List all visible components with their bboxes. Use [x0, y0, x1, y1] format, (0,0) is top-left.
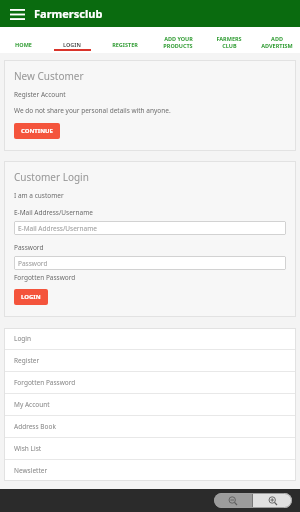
staticText: REGISTER — [112, 41, 138, 48]
button[interactable]: My Account — [4, 394, 296, 415]
staticText: ADVERTISM — [261, 42, 293, 49]
button[interactable]: REGISTER — [98, 27, 151, 53]
staticText: E-Mail Address/Username — [14, 208, 93, 217]
button[interactable]: Zoom in — [253, 493, 292, 508]
button[interactable]: Login — [4, 328, 296, 349]
staticText: Password — [14, 243, 44, 252]
button[interactable]: Password — [14, 256, 286, 270]
button[interactable]: Forgotten Password — [14, 273, 76, 282]
button[interactable]: ADD — [253, 27, 300, 53]
staticText: Forgotten Password — [14, 273, 76, 282]
button[interactable]: E-Mail Address/Username — [14, 221, 286, 235]
staticText: Password — [18, 259, 48, 268]
button[interactable]: LOGIN — [46, 27, 98, 53]
button[interactable]: ADD YOUR — [151, 27, 205, 53]
staticText: Customer Login — [14, 170, 89, 184]
staticText: CLUB — [222, 42, 237, 49]
staticText: Register — [14, 356, 40, 365]
staticText: LOGIN — [63, 41, 81, 48]
staticText: ADD — [271, 35, 283, 42]
button[interactable]: Forgotten Password — [4, 372, 296, 393]
button[interactable]: Zoom out — [214, 493, 252, 508]
button[interactable]: LOGIN — [14, 289, 48, 305]
button[interactable]: FARMERS — [205, 27, 253, 53]
staticText: E-Mail Address/Username — [18, 224, 97, 233]
staticText: Register Account — [14, 90, 66, 99]
staticText: Wish List — [14, 444, 42, 453]
button[interactable]: CONTINUE — [14, 123, 60, 139]
button[interactable]: Register — [4, 350, 296, 371]
staticText: ADD YOUR — [164, 35, 193, 42]
staticText: PRODUCTS — [163, 42, 193, 49]
staticText: Forgotten Password — [14, 378, 76, 387]
staticText: I am a customer — [14, 191, 64, 200]
staticText: CONTINUE — [21, 127, 53, 135]
staticText: LOGIN — [21, 293, 41, 301]
staticText: My Account — [14, 400, 50, 409]
staticText: Newsletter — [14, 466, 48, 475]
staticText: Address Book — [14, 422, 56, 431]
button[interactable]: Address Book — [4, 416, 296, 437]
button[interactable]: Wish List — [4, 438, 296, 459]
staticText: New Customer — [14, 69, 84, 83]
button[interactable]: Newsletter — [4, 460, 296, 481]
staticText: FARMERS — [216, 35, 242, 42]
staticText: HOME — [15, 41, 32, 48]
button[interactable]: Open navigation menu — [6, 3, 28, 25]
staticText: We do not share your personal details wi… — [14, 106, 171, 115]
staticText: Farmersclub — [34, 6, 103, 21]
staticText: Login — [14, 334, 32, 343]
button[interactable]: HOME — [0, 27, 46, 53]
